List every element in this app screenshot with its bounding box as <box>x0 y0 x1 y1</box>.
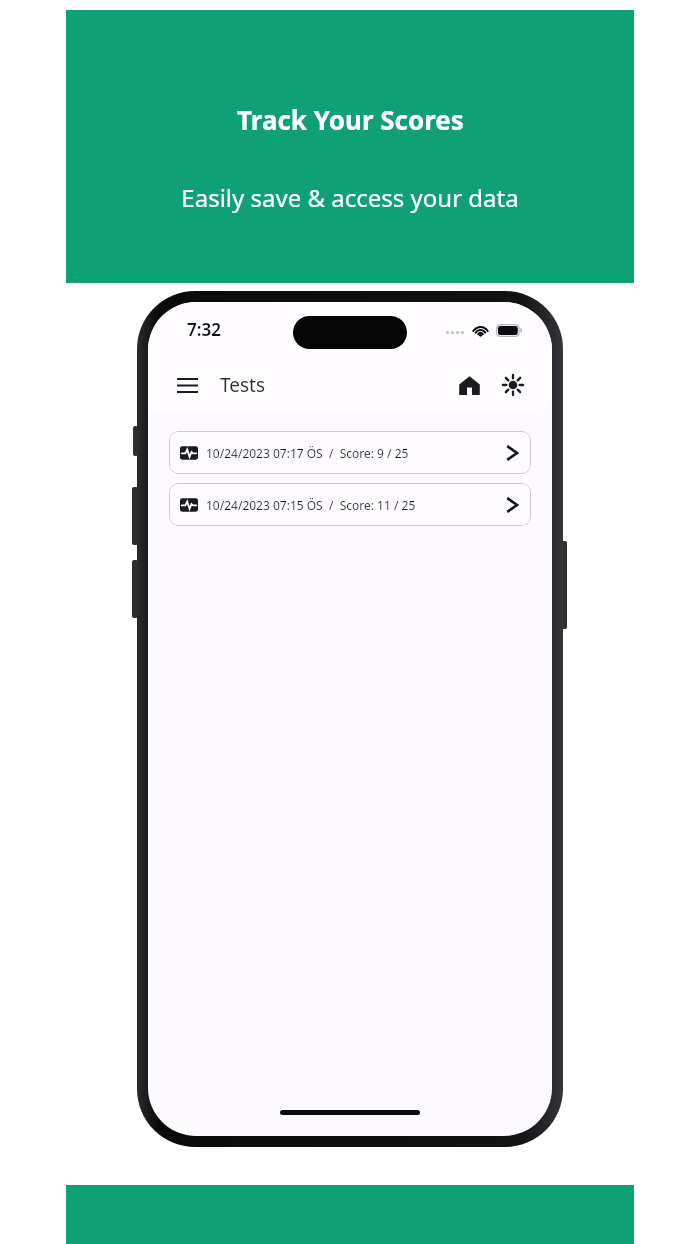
staticText: 7:32 <box>187 318 221 341</box>
staticText: Track Your Scores <box>237 102 464 137</box>
button[interactable]: Toggle theme brightness <box>492 364 534 406</box>
button[interactable]: Open navigation menu <box>167 365 207 405</box>
staticText: 10/24/2023 07:15 ÖS / Score: 11 / 25 <box>206 497 416 513</box>
staticText: Tests <box>220 372 266 398</box>
staticText: 10/24/2023 07:17 ÖS / Score: 9 / 25 <box>206 445 409 461</box>
button[interactable]: Home <box>448 364 490 406</box>
button[interactable]: 10/24/2023 07:17 ÖS / Score: 9 / 25 <box>169 431 531 474</box>
staticText: Easily save & access your data <box>181 181 519 214</box>
button[interactable]: 10/24/2023 07:15 ÖS / Score: 11 / 25 <box>169 483 531 526</box>
